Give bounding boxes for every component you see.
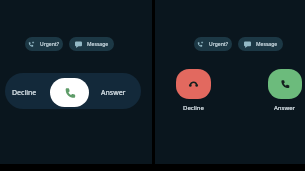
staticText: Message: [256, 41, 278, 48]
staticText: Decline: [183, 104, 204, 112]
staticText: Answer: [101, 88, 126, 98]
button[interactable]: Answer call: [50, 78, 89, 107]
button[interactable]: Urgent?: [194, 37, 232, 51]
button[interactable]: Message: [238, 37, 283, 51]
staticText: Message: [87, 41, 109, 48]
staticText: Urgent?: [209, 41, 229, 48]
button[interactable]: Urgent?: [25, 37, 63, 51]
button[interactable]: Decline: [176, 69, 211, 99]
staticText: Answer: [274, 104, 295, 112]
button[interactable]: Decline: [7, 82, 42, 104]
staticText: Urgent?: [40, 41, 60, 48]
button[interactable]: Message: [69, 37, 114, 51]
button[interactable]: Answer: [96, 82, 131, 104]
staticText: Decline: [12, 88, 37, 98]
button[interactable]: Answer: [268, 69, 302, 99]
